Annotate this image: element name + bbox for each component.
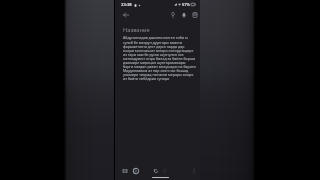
button[interactable]: Change colour <box>131 166 141 176</box>
button[interactable]: Add item <box>120 166 130 176</box>
staticText: Название <box>123 26 150 34</box>
button[interactable]: Archive <box>189 9 200 20</box>
button[interactable]: Back <box>121 10 131 20</box>
staticText: 57% <box>182 2 190 7</box>
button[interactable]: Undo <box>151 166 161 176</box>
staticText: 23:38 <box>121 2 132 8</box>
button[interactable]: More options <box>189 166 199 176</box>
button[interactable]: Reminder <box>178 9 189 20</box>
staticText: Абдусаннадов джонни келген тиби ы сулоб … <box>123 35 196 81</box>
button[interactable]: Pin <box>167 9 178 20</box>
button[interactable]: Redo <box>159 166 169 176</box>
